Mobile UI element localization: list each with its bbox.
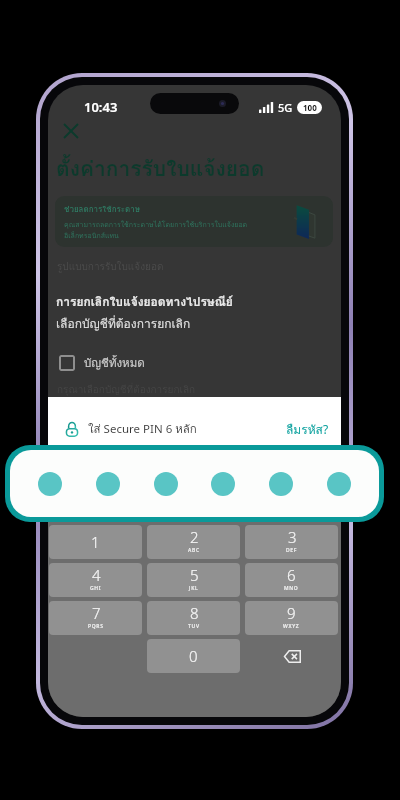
staticText: รูปแบบการรับใบแจ้งยอด [57,259,164,275]
staticText: GHI [90,585,102,592]
button[interactable]: บัญชีทั้งหมด [59,354,145,372]
button[interactable]: 9 [245,601,338,635]
staticText: บัญชีทั้งหมด [84,354,145,372]
staticText: ช่วยลดการใช้กระดาษ [64,203,141,216]
staticText: 10:43 [84,98,118,116]
staticText: 5G [278,100,293,115]
button[interactable]: 3 [245,525,338,559]
staticText: TUV [188,623,200,630]
staticText: PQRS [88,623,104,630]
staticText: 1 [91,532,100,552]
staticText: 2 [190,527,199,547]
button[interactable]: 4 [49,563,142,597]
button[interactable]: ลืมรหัส? [286,420,329,439]
staticText: 3 [288,527,297,547]
staticText: ใส่ Secure PIN 6 หลัก [88,420,197,438]
staticText: DEF [286,547,298,554]
staticText: 4 [92,565,101,585]
staticText: กรุณาเลือกบัญชีที่ต้องการยกเลิก [57,382,196,398]
staticText: คุณสามารถลดการใช้กระดาษได้โดยการใช้บริกา… [64,219,271,241]
staticText: 7 [92,603,101,623]
staticText: การยกเลิกใบแจ้งยอดทางไปรษณีย์ [56,292,233,311]
staticText: เลือกบัญชีที่ต้องการยกเลิก [56,314,191,333]
staticText: ABC [188,547,200,554]
staticText: 6 [287,565,296,585]
staticText: ตั้งค่าการรับใบแจ้งยอด [56,152,265,185]
button[interactable]: Delete [245,639,338,673]
button[interactable]: 0 [147,639,240,673]
staticText: 0 [189,646,198,666]
button[interactable]: 8 [147,601,240,635]
staticText: 5 [190,565,199,585]
staticText: WXYZ [283,623,300,630]
button[interactable]: Close [55,115,87,147]
button[interactable]: 7 [49,601,142,635]
button[interactable]: 2 [147,525,240,559]
button[interactable]: 5 [147,563,240,597]
staticText: 100 [303,102,317,113]
staticText: MNO [284,585,299,592]
staticText: JKL [189,585,199,592]
staticText: 8 [190,603,199,623]
staticText: 9 [287,603,296,623]
button[interactable]: 6 [245,563,338,597]
button[interactable]: 1 [49,525,142,559]
